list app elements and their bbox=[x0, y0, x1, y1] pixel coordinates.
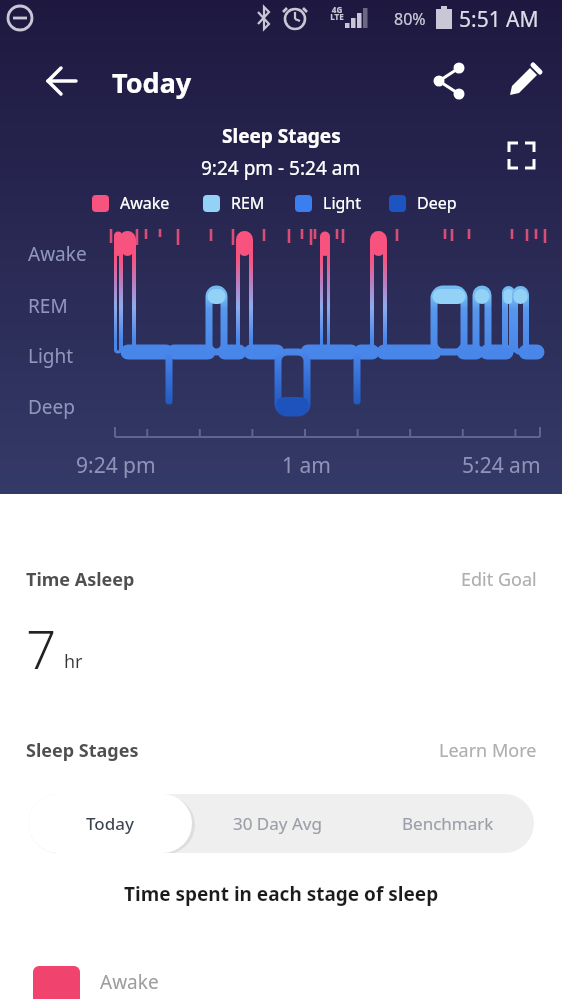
staticText: REM bbox=[28, 293, 68, 319]
staticText: REM bbox=[231, 192, 265, 214]
button[interactable]: Today bbox=[28, 794, 192, 853]
staticText: 9:24 pm bbox=[76, 451, 156, 480]
staticText: 7 bbox=[26, 612, 57, 684]
button[interactable]: Today bbox=[112, 64, 192, 101]
staticText: hr bbox=[64, 649, 83, 674]
staticText: 5:24 am bbox=[462, 451, 541, 480]
button[interactable] bbox=[502, 59, 546, 103]
staticText: 30 Day Avg bbox=[233, 812, 322, 835]
button[interactable]: 30 Day Avg bbox=[192, 794, 362, 853]
staticText: Awake bbox=[120, 192, 170, 214]
staticText: Light bbox=[28, 343, 74, 369]
staticText: Awake bbox=[28, 241, 87, 267]
staticText: Sleep Stages bbox=[222, 123, 341, 149]
staticText: Awake bbox=[100, 969, 159, 995]
staticText: 80% bbox=[394, 8, 426, 30]
staticText: 4G LTE bbox=[330, 4, 344, 23]
button[interactable]: Learn More bbox=[439, 738, 537, 763]
staticText: 5:51 AM bbox=[459, 5, 539, 34]
button[interactable] bbox=[428, 59, 472, 103]
button[interactable] bbox=[506, 140, 540, 174]
staticText: 1 am bbox=[282, 451, 331, 480]
button[interactable] bbox=[40, 59, 84, 103]
staticText: Light bbox=[323, 192, 362, 214]
staticText: Today bbox=[86, 812, 134, 835]
staticText: Sleep Stages bbox=[26, 738, 139, 763]
staticText: Time spent in each stage of sleep bbox=[124, 881, 439, 907]
staticText: 9:24 pm - 5:24 am bbox=[201, 155, 361, 181]
staticText: Deep bbox=[417, 192, 457, 214]
button[interactable]: Benchmark bbox=[362, 794, 534, 853]
staticText: Benchmark bbox=[402, 812, 494, 835]
button[interactable]: Edit Goal bbox=[461, 567, 537, 592]
staticText: Deep bbox=[28, 394, 75, 420]
staticText: Time Asleep bbox=[26, 567, 135, 592]
